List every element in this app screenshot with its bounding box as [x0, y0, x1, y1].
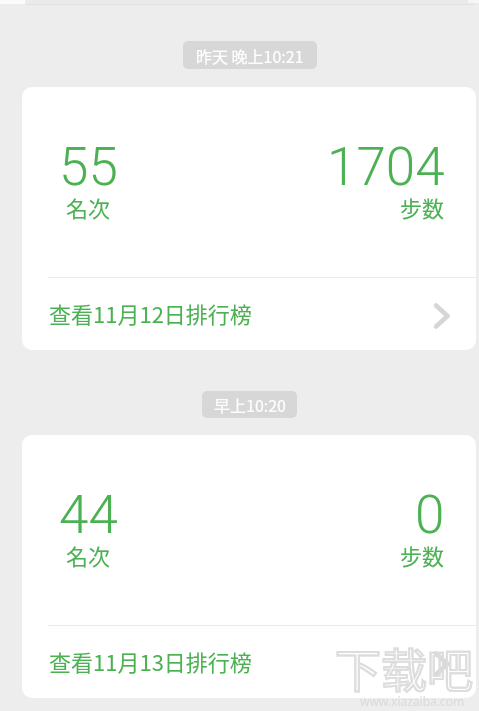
- button[interactable]: 查看11月12日排行榜: [22, 278, 476, 350]
- staticText: 44: [59, 484, 118, 546]
- button[interactable]: 查看11月13日排行榜: [22, 626, 476, 698]
- staticText: www.xiazaiba.com: [360, 693, 465, 709]
- staticText: 步数: [400, 191, 445, 223]
- staticText: 查看11月12日排行榜: [49, 297, 252, 329]
- staticText: 0: [415, 484, 445, 546]
- staticText: 昨天 晚上10:21: [196, 44, 304, 67]
- staticText: 1704: [327, 136, 445, 198]
- staticText: 名次: [66, 539, 111, 571]
- staticText: 查看11月13日排行榜: [49, 645, 252, 677]
- staticText: 下载吧: [335, 634, 473, 701]
- staticText: 55: [59, 136, 118, 198]
- staticText: 名次: [66, 191, 111, 223]
- staticText: 早上10:20: [214, 393, 286, 416]
- staticText: 步数: [400, 539, 445, 571]
